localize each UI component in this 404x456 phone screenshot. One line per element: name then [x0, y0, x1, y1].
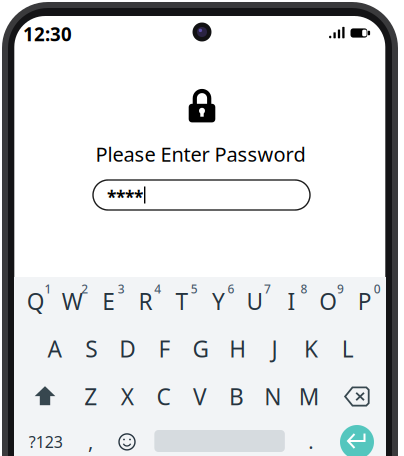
staticText: G — [193, 334, 210, 364]
staticText: . — [308, 428, 313, 455]
button[interactable]: **** — [93, 180, 310, 210]
staticText: ?123 — [29, 431, 63, 452]
button[interactable]: Emoji — [109, 422, 145, 456]
staticText: 5 — [191, 281, 198, 297]
staticText: 7 — [264, 281, 271, 297]
staticText: 6 — [227, 281, 234, 297]
staticText: I — [288, 286, 296, 316]
button[interactable]: . — [294, 422, 328, 456]
staticText: A — [47, 334, 61, 364]
button[interactable]: U — [238, 279, 272, 323]
staticText: Please Enter Password — [95, 141, 305, 167]
staticText: Q — [27, 286, 45, 316]
staticText: 2 — [81, 281, 88, 297]
staticText: T — [175, 286, 188, 316]
button[interactable]: J — [257, 327, 291, 371]
staticText: V — [193, 381, 207, 411]
button[interactable]: Shift — [24, 374, 66, 418]
staticText: X — [121, 381, 134, 411]
button[interactable]: H — [221, 327, 255, 371]
button[interactable]: D — [111, 327, 145, 371]
button[interactable]: G — [184, 327, 218, 371]
staticText: 3 — [118, 281, 125, 297]
staticText: N — [264, 381, 281, 411]
button[interactable]: , — [73, 422, 107, 456]
staticText: Y — [212, 286, 225, 316]
button[interactable]: I — [275, 279, 309, 323]
staticText: O — [319, 286, 337, 316]
button[interactable]: X — [110, 374, 144, 418]
staticText: 1 — [45, 281, 52, 297]
staticText: J — [271, 334, 277, 364]
button[interactable]: Enter — [340, 425, 374, 456]
staticText: L — [342, 334, 354, 364]
staticText: **** — [107, 185, 143, 208]
staticText: E — [102, 286, 115, 316]
button[interactable]: R — [128, 279, 162, 323]
button[interactable]: N — [256, 374, 290, 418]
button[interactable]: F — [147, 327, 181, 371]
button[interactable]: K — [294, 327, 328, 371]
staticText: D — [119, 334, 136, 364]
button[interactable]: E — [92, 279, 126, 323]
staticText: H — [229, 334, 246, 364]
staticText: , — [88, 428, 93, 455]
staticText: B — [229, 381, 244, 411]
staticText: U — [247, 286, 264, 316]
button[interactable]: A — [37, 327, 71, 371]
button[interactable]: T — [165, 279, 199, 323]
staticText: F — [158, 334, 170, 364]
button[interactable]: Z — [74, 374, 108, 418]
button[interactable]: P — [348, 279, 382, 323]
button[interactable]: Y — [201, 279, 235, 323]
button[interactable]: O — [311, 279, 345, 323]
staticText: M — [299, 381, 320, 411]
button[interactable]: Backspace — [335, 374, 379, 418]
staticText: 12:30 — [23, 22, 72, 46]
staticText: S — [85, 334, 97, 364]
staticText: 0 — [374, 281, 381, 297]
staticText: 9 — [337, 281, 344, 297]
staticText: 4 — [154, 281, 161, 297]
button[interactable]: M — [292, 374, 326, 418]
button[interactable]: Q — [19, 279, 53, 323]
staticText: C — [157, 381, 171, 411]
button[interactable]: S — [74, 327, 108, 371]
button[interactable]: W — [55, 279, 89, 323]
button[interactable]: B — [219, 374, 253, 418]
staticText: P — [358, 286, 372, 316]
staticText: K — [304, 334, 318, 364]
button[interactable]: Space — [150, 421, 289, 456]
button[interactable]: ?123 — [21, 422, 71, 456]
button[interactable]: V — [183, 374, 217, 418]
staticText: Z — [84, 381, 97, 411]
button[interactable]: C — [147, 374, 181, 418]
staticText: W — [62, 286, 83, 316]
staticText: R — [138, 286, 152, 316]
staticText: 8 — [300, 281, 307, 297]
button[interactable]: L — [331, 327, 365, 371]
